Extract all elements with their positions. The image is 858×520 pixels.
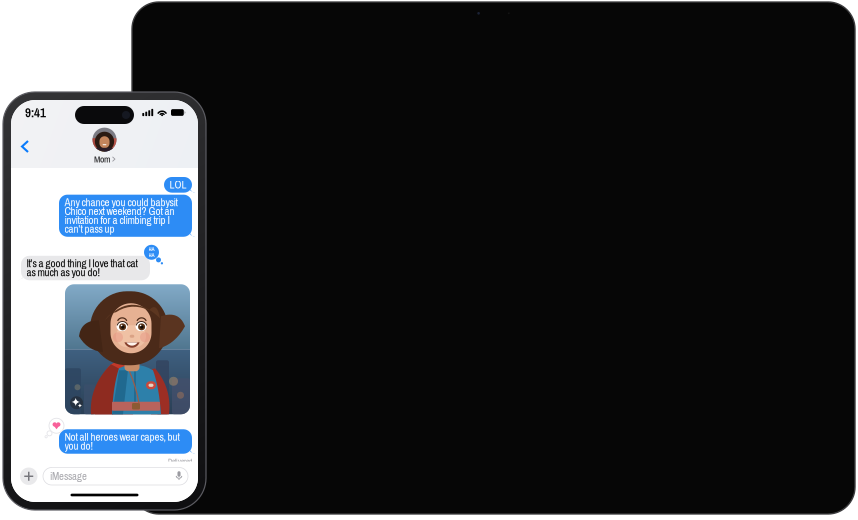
button[interactable]: Not all heroes wear capes, but you do! [59,429,192,454]
button[interactable]: iMessage [43,467,188,485]
staticText: Any chance you could babysit Chico next … [64,198,177,233]
button[interactable]: Mom [86,127,122,166]
staticText: LOL [169,180,186,189]
staticText: Mom [94,153,111,165]
button[interactable]: Back [11,132,37,161]
button[interactable]: It's a good thing I love that cat as muc… [21,256,150,280]
staticText: HA [148,252,154,258]
staticText: 9:41 [25,104,46,121]
staticText: Not all heroes wear capes, but you do! [64,432,179,450]
button[interactable]: Photo attachment [65,284,190,414]
button[interactable]: Any chance you could babysit Chico next … [59,195,192,237]
staticText: HA [148,246,154,253]
staticText: Delivered [168,456,192,466]
button[interactable]: Add attachment [20,467,37,485]
staticText: iMessage [50,469,87,483]
button[interactable]: LOL [164,177,192,193]
staticText: It's a good thing I love that cat as muc… [26,259,137,277]
